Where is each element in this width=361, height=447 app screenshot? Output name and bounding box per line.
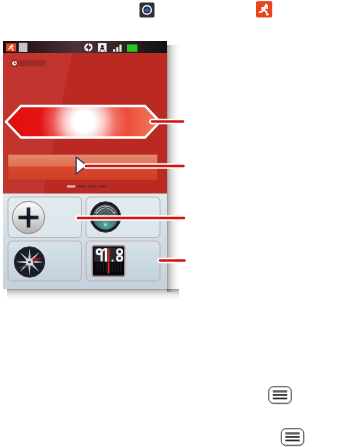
button[interactable]: Speedometer [86,197,160,238]
button[interactable]: Camera app icon [140,3,155,18]
button[interactable]: Page indicator [62,184,107,190]
button[interactable]: Add new activity [8,197,82,238]
button[interactable]: Legend note one [269,387,292,404]
button[interactable]: Radio [86,241,160,281]
button[interactable]: Play workout [8,155,158,181]
button[interactable]: Start workout banner [6,106,160,138]
button[interactable]: Notification: running tracker [6,43,18,52]
button[interactable]: Current activity [10,57,50,69]
button[interactable]: Running tracker app icon [256,1,272,17]
button[interactable]: Legend note two [281,429,304,446]
button[interactable]: Compass [8,241,82,281]
button[interactable]: Sync status [84,42,94,52]
